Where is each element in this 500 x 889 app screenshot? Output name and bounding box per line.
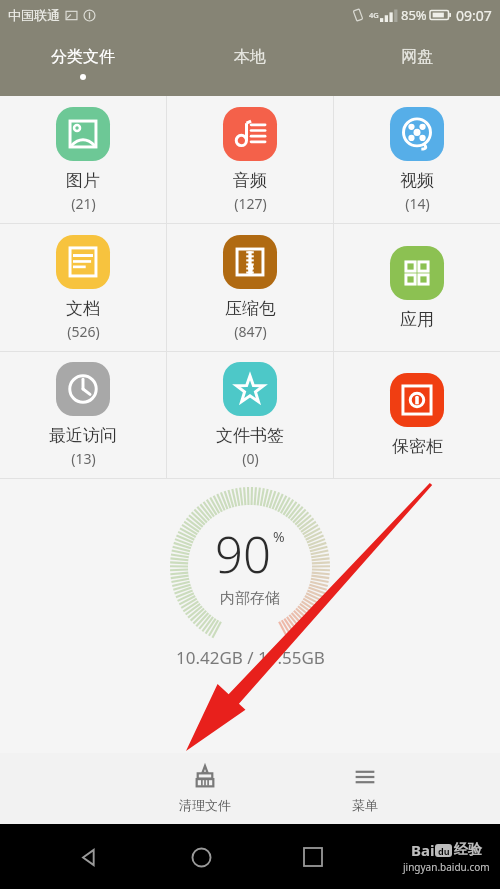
staticText: Bai	[411, 840, 435, 860]
staticText: 图片	[66, 170, 100, 191]
staticText: du	[438, 845, 450, 857]
button[interactable]: Recents	[291, 835, 335, 879]
staticText: (847)	[234, 322, 267, 341]
staticText: (21)	[71, 194, 96, 213]
staticText: 10.42GB / 11.55GB	[176, 646, 325, 669]
staticText: (0)	[242, 449, 259, 468]
button[interactable]: 文档	[0, 224, 166, 351]
button[interactable]: 音频	[167, 96, 333, 223]
staticText: 应用	[400, 309, 434, 330]
staticText: 清理文件	[179, 797, 231, 813]
staticText: 内部存储	[220, 589, 280, 608]
staticText: 菜单	[352, 797, 378, 813]
button[interactable]: 分类文件	[0, 30, 166, 96]
staticText: (13)	[71, 449, 96, 468]
button[interactable]: Home	[179, 835, 223, 879]
button[interactable]: Back	[67, 835, 111, 879]
staticText: (14)	[405, 194, 430, 213]
staticText: jingyan.baidu.com	[403, 860, 490, 874]
staticText: 文件书签	[216, 425, 284, 446]
staticText: 最近访问	[49, 425, 117, 446]
staticText: 90	[215, 521, 271, 588]
staticText: 文档	[66, 298, 100, 319]
button[interactable]: 图片	[0, 96, 166, 223]
staticText: 网盘	[401, 47, 433, 67]
button[interactable]: 清理文件	[150, 753, 260, 824]
staticText: 中国联通	[8, 7, 60, 23]
staticText: 经验	[454, 841, 482, 859]
staticText: %	[273, 527, 285, 546]
staticText: 视频	[400, 170, 434, 191]
button[interactable]: 文件书签	[167, 352, 333, 478]
button[interactable]: 菜单	[310, 753, 420, 824]
button[interactable]: 本地	[166, 30, 333, 96]
staticText: 保密柜	[392, 436, 443, 457]
staticText: 本地	[234, 47, 266, 67]
staticText: 85%	[401, 6, 427, 24]
button[interactable]: 保密柜	[334, 352, 500, 478]
staticText: 分类文件	[51, 47, 115, 67]
button[interactable]: 应用	[334, 224, 500, 351]
button[interactable]: 视频	[334, 96, 500, 223]
staticText: 压缩包	[225, 298, 276, 319]
staticText: (526)	[67, 322, 100, 341]
button[interactable]: 压缩包	[167, 224, 333, 351]
button[interactable]: 最近访问	[0, 352, 166, 478]
staticText: 09:07	[456, 6, 492, 25]
staticText: 音频	[233, 170, 267, 191]
staticText: 4G	[369, 10, 379, 20]
button[interactable]: 网盘	[333, 30, 500, 96]
staticText: (127)	[234, 194, 267, 213]
